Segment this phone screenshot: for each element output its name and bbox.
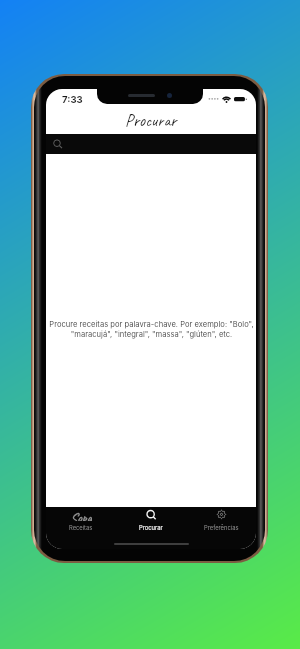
staticText: Sopa [71,510,92,521]
staticText: Receitas [69,524,93,531]
staticText: Preferências [204,524,239,531]
staticText: Procurar [139,524,163,531]
staticText: 7:33 [62,94,83,105]
other: Search [53,139,63,149]
button[interactable]: Search [46,134,256,154]
button[interactable]: Procurar [116,507,186,531]
staticText: Procurar [125,110,177,131]
button[interactable]: Sopa [46,507,116,531]
staticText: Procure receitas por palavra-chave. Por … [49,320,254,339]
button[interactable]: Preferências [186,507,256,531]
